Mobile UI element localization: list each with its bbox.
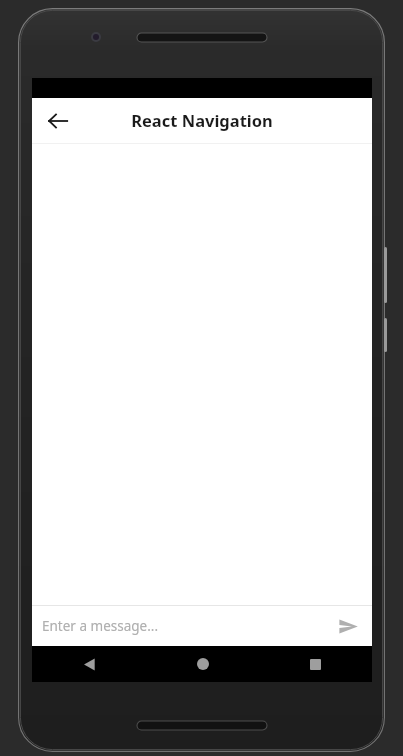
button[interactable]: Back: [38, 101, 78, 141]
button[interactable]: Recent apps: [259, 646, 372, 682]
staticText: React Navigation: [131, 109, 273, 131]
button[interactable]: Enter a message...: [32, 606, 328, 646]
button[interactable]: Home: [146, 646, 259, 682]
button[interactable]: Send: [328, 606, 368, 646]
button[interactable]: Back: [32, 646, 146, 682]
staticText: Enter a message...: [42, 617, 159, 635]
